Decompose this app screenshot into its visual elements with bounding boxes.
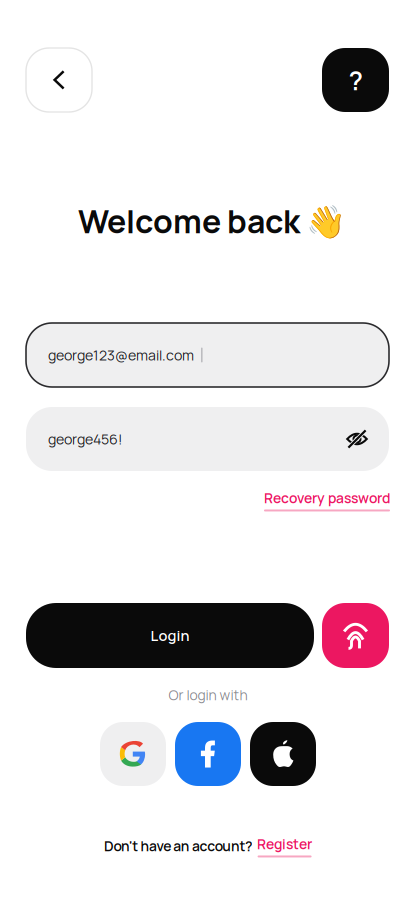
staticText: ?: [348, 62, 362, 98]
button[interactable]: Back: [26, 48, 92, 112]
button[interactable]: Register: [257, 834, 312, 857]
staticText: Don't have an account?: [104, 836, 253, 855]
staticText: Register: [257, 834, 312, 853]
button[interactable]: Help: [322, 48, 389, 112]
button[interactable]: Show password: [341, 424, 373, 454]
button[interactable]: Continue with Apple: [250, 722, 316, 786]
staticText: Or login with: [168, 685, 247, 704]
button[interactable]: Continue with Facebook: [175, 722, 241, 786]
staticText: george123@email.com: [48, 345, 194, 365]
button[interactable]: Login: [26, 603, 314, 668]
button[interactable]: Recovery password: [264, 488, 390, 511]
staticText: Login: [150, 625, 189, 645]
button[interactable]: Log in with fingerprint: [322, 603, 389, 668]
staticText: Recovery password: [264, 488, 390, 507]
staticText: george456!: [48, 429, 122, 449]
staticText: Welcome back 👋: [78, 199, 346, 243]
button[interactable]: Continue with Google: [100, 722, 166, 786]
